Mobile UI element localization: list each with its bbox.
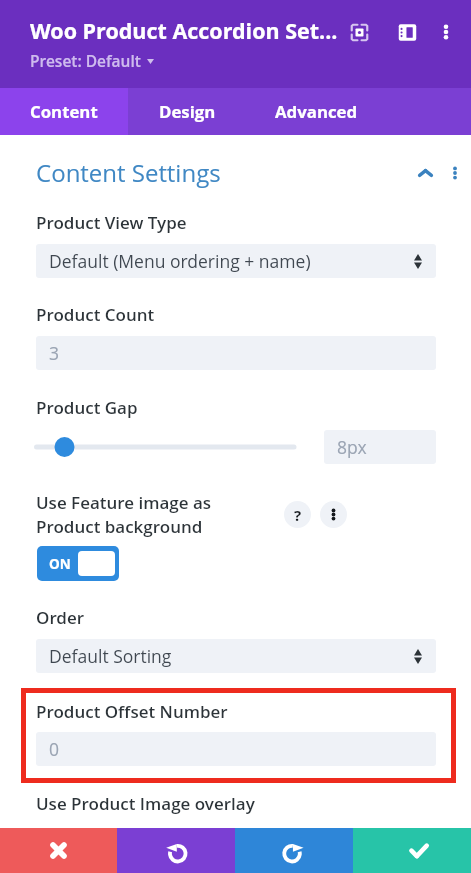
button[interactable]: Undo xyxy=(117,828,235,873)
button[interactable]: Layout view xyxy=(389,14,425,50)
staticText: Woo Product Accordion Set... xyxy=(30,16,338,45)
staticText: Product Count xyxy=(36,303,155,326)
staticText: Use Product Image overlay xyxy=(36,792,255,815)
button[interactable]: ON xyxy=(37,546,119,581)
button[interactable]: Advanced xyxy=(247,88,385,135)
button[interactable]: Fullscreen xyxy=(341,14,377,50)
staticText: Order xyxy=(36,606,85,629)
staticText: 8px xyxy=(337,435,367,459)
button[interactable]: Default (Menu ordering + name) xyxy=(36,244,436,278)
button[interactable]: Help xyxy=(284,501,311,528)
button[interactable]: 8px xyxy=(324,430,436,464)
staticText: Advanced xyxy=(275,100,358,123)
staticText: 3 xyxy=(49,341,60,365)
staticText: Content xyxy=(30,100,98,123)
staticText: Preset: Default xyxy=(30,50,141,71)
staticText: Product View Type xyxy=(36,211,187,234)
button[interactable]: Default Sorting xyxy=(36,639,436,673)
staticText: Use Feature image as xyxy=(36,491,212,514)
staticText: ? xyxy=(294,505,302,525)
staticText: Default Sorting xyxy=(49,644,172,668)
button[interactable]: Save xyxy=(353,828,471,873)
staticText: Product background xyxy=(36,515,203,538)
staticText: ON xyxy=(49,555,71,573)
button[interactable]: Section options xyxy=(442,160,468,186)
button[interactable]: 0 xyxy=(36,732,436,766)
button[interactable]: Design xyxy=(128,88,247,135)
button[interactable]: Cancel xyxy=(0,828,117,873)
staticText: Product Offset Number xyxy=(36,700,228,723)
button[interactable]: 3 xyxy=(36,336,436,370)
button[interactable]: Field options xyxy=(320,501,347,528)
staticText: Content Settings xyxy=(36,156,221,189)
staticText: Default (Menu ordering + name) xyxy=(49,249,311,273)
staticText: Product Gap xyxy=(36,396,138,419)
button[interactable]: Collapse section xyxy=(410,158,440,188)
staticText: 0 xyxy=(49,737,60,761)
button[interactable]: More options xyxy=(428,14,464,50)
staticText: Design xyxy=(159,100,216,123)
button[interactable]: Redo xyxy=(235,828,353,873)
button[interactable]: Content xyxy=(0,88,128,135)
